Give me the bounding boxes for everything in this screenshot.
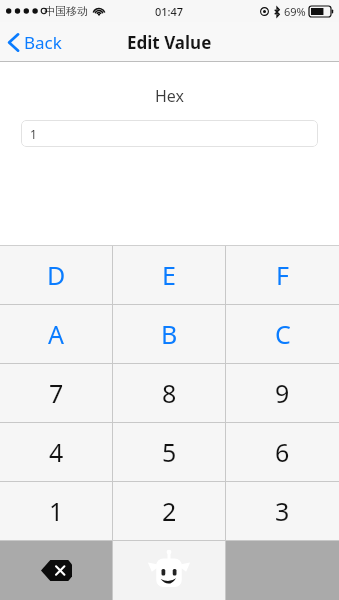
button[interactable]: C: [226, 305, 339, 363]
staticText: 1: [30, 126, 37, 142]
button[interactable]: 7: [0, 364, 112, 422]
staticText: 7: [49, 376, 64, 410]
button[interactable]: 8: [113, 364, 225, 422]
button[interactable]: 9: [226, 364, 339, 422]
button[interactable]: A: [0, 305, 112, 363]
button[interactable]: B: [113, 305, 225, 363]
staticText: E: [162, 258, 176, 292]
button[interactable]: Delete: [0, 541, 112, 600]
button[interactable]: 1: [21, 120, 318, 147]
staticText: Back: [24, 31, 62, 54]
staticText: 4: [49, 435, 64, 469]
staticText: Edit Value: [127, 31, 212, 54]
button[interactable]: F: [226, 246, 339, 304]
staticText: 中国移动: [44, 4, 88, 18]
staticText: 9: [275, 376, 290, 410]
staticText: 6: [275, 435, 290, 469]
button[interactable]: 2: [113, 482, 225, 540]
staticText: A: [48, 317, 64, 351]
staticText: Hex: [0, 85, 339, 107]
staticText: 2: [162, 494, 177, 528]
staticText: F: [276, 258, 289, 292]
staticText: B: [161, 317, 178, 351]
staticText: 8: [162, 376, 177, 410]
button[interactable]: 5: [113, 423, 225, 481]
button[interactable]: 6: [226, 423, 339, 481]
staticText: 01:47: [155, 4, 184, 19]
button[interactable]: 1: [0, 482, 112, 540]
button[interactable]: 4: [0, 423, 112, 481]
staticText: 3: [275, 494, 290, 528]
staticText: 1: [49, 494, 64, 528]
button[interactable]: Keyboard: [113, 541, 225, 600]
staticText: C: [275, 317, 291, 351]
button[interactable]: D: [0, 246, 112, 304]
button[interactable]: E: [113, 246, 225, 304]
button[interactable]: 3: [226, 482, 339, 540]
staticText: 69%: [284, 4, 306, 19]
staticText: 5: [162, 435, 177, 469]
button[interactable]: Back: [0, 22, 72, 62]
staticText: D: [47, 258, 66, 292]
